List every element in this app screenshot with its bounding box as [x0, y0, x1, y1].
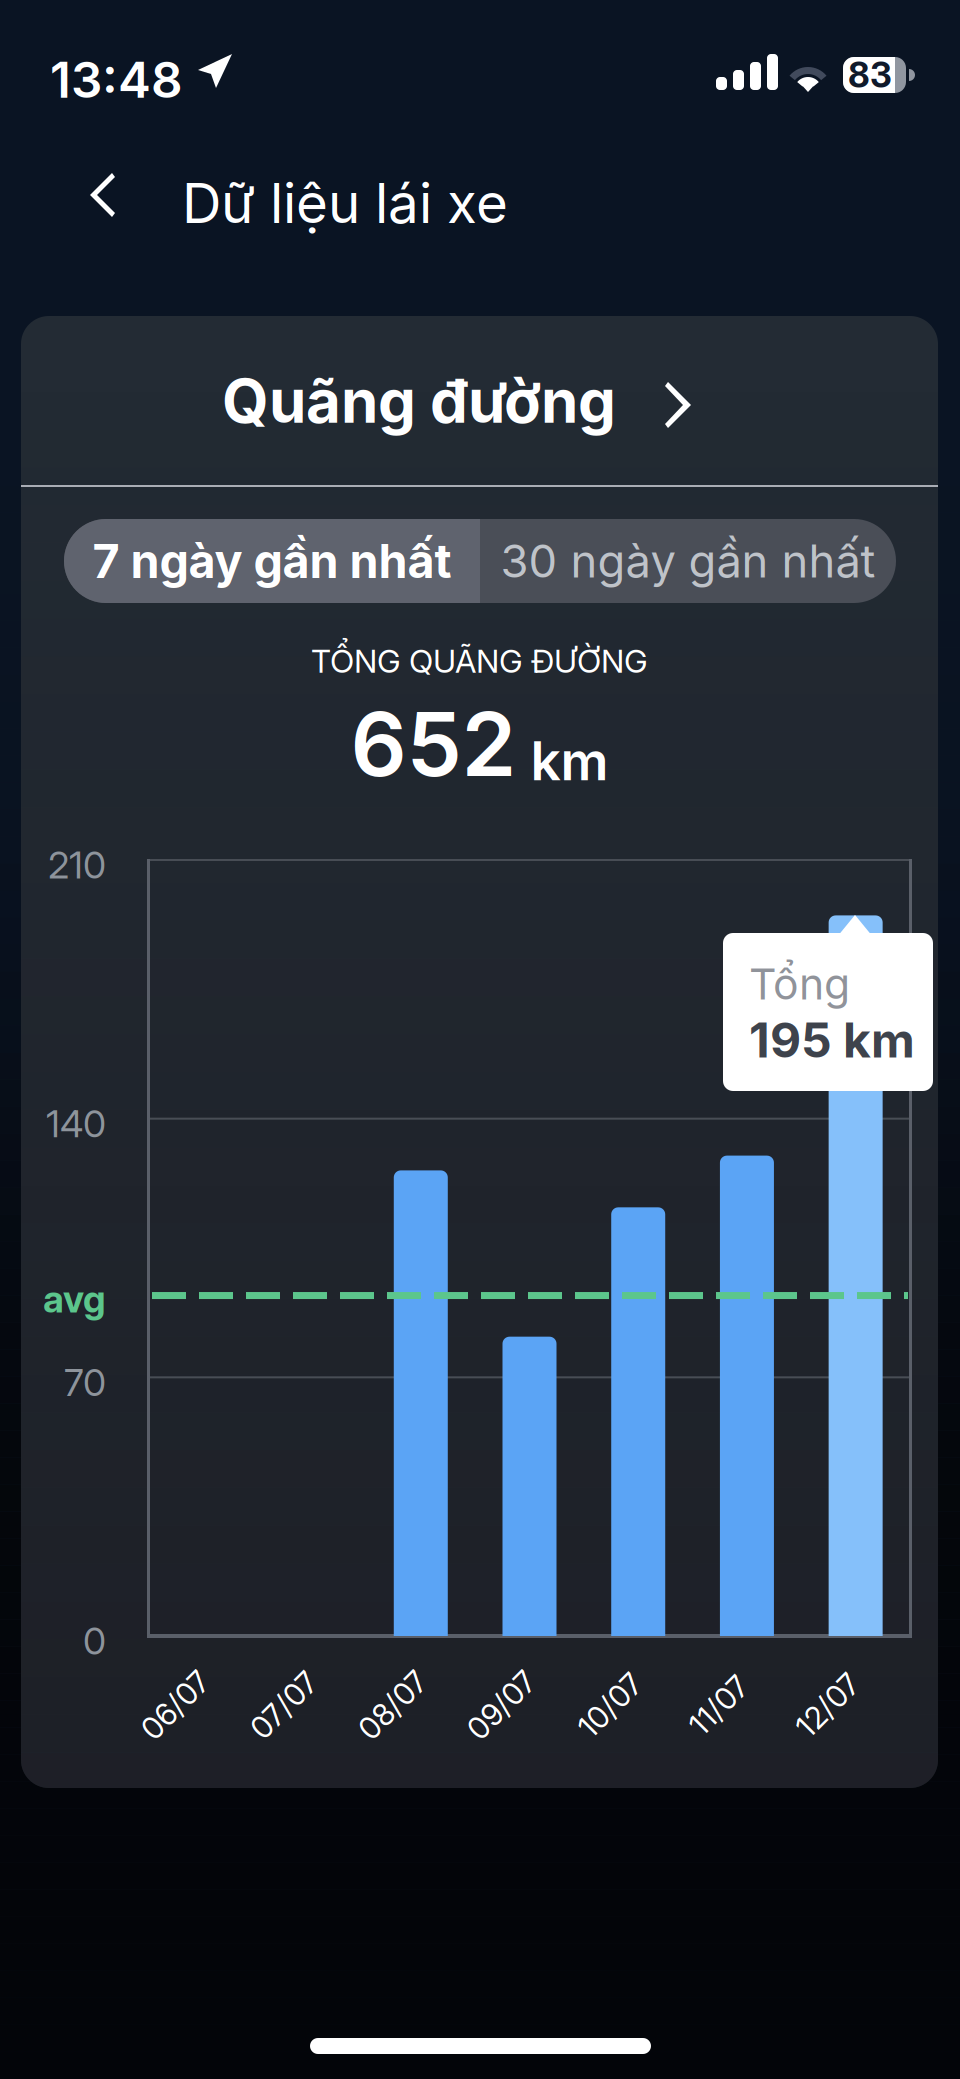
staticText: km — [530, 729, 608, 793]
staticText: 7 ngày gần nhất — [92, 533, 451, 589]
staticText: Tổng — [749, 958, 850, 1010]
staticText: 08/07 — [351, 1686, 434, 1723]
button[interactable]: Back — [46, 140, 156, 250]
staticText: 11/07 — [684, 1686, 754, 1723]
staticText: 210 — [48, 842, 106, 888]
button[interactable]: Quãng đường — [21, 316, 938, 485]
staticText: Quãng đường — [222, 365, 616, 437]
staticText: 195 km — [749, 1011, 915, 1069]
staticText: 0 — [83, 1618, 106, 1664]
staticText: 83 — [848, 54, 892, 96]
staticText: 140 — [46, 1101, 106, 1146]
staticText: 10/07 — [572, 1686, 649, 1723]
staticText: 12/07 — [790, 1686, 866, 1723]
staticText: TỔNG QUÃNG ĐƯỜNG — [311, 642, 648, 680]
button[interactable]: 7 ngày gần nhất — [64, 519, 896, 603]
staticText: 652 — [350, 691, 516, 797]
staticText: 13:48 — [50, 50, 183, 110]
staticText: 70 — [64, 1360, 106, 1405]
staticText: 30 ngày gần nhất — [500, 534, 875, 588]
staticText: 06/07 — [134, 1686, 217, 1723]
staticText: 07/07 — [244, 1686, 325, 1723]
staticText: Dữ liệu lái xe — [182, 170, 508, 236]
staticText: 09/07 — [460, 1686, 543, 1723]
staticText: avg — [43, 1276, 106, 1322]
